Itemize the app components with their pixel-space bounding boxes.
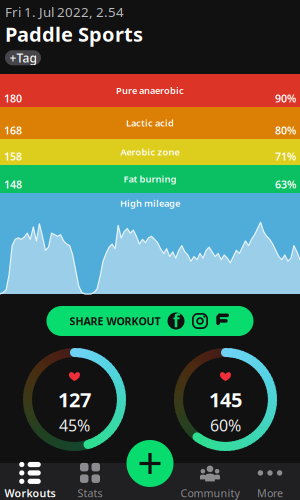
staticText: 168: [4, 123, 22, 137]
staticText: Lactic acid: [126, 117, 174, 129]
staticText: Aerobic zone: [120, 146, 179, 158]
staticText: Workouts: [4, 486, 55, 500]
staticText: f: [173, 309, 180, 332]
button[interactable]: +Tag: [5, 50, 41, 65]
staticText: More: [257, 486, 283, 500]
staticText: Pure anaerobic: [116, 84, 184, 97]
button[interactable]: Stats: [60, 463, 120, 500]
staticText: 71%: [275, 149, 296, 163]
staticText: 145: [209, 386, 242, 413]
staticText: Fat burning: [123, 173, 176, 185]
staticText: Community: [180, 486, 239, 500]
button[interactable]: More: [240, 463, 300, 500]
button[interactable]: Add workout: [126, 440, 173, 487]
staticText: SHARE WORKOUT: [69, 314, 160, 328]
button[interactable]: Community: [180, 463, 240, 500]
staticText: 180: [4, 91, 22, 105]
staticText: 158: [4, 149, 22, 163]
staticText: High mileage: [120, 197, 180, 209]
staticText: 63%: [275, 177, 296, 191]
staticText: Fri 1. Jul 2022, 2.54: [5, 3, 124, 21]
staticText: 90%: [275, 91, 296, 105]
staticText: +Tag: [9, 50, 36, 66]
button[interactable]: Workouts: [0, 463, 60, 500]
staticText: 148: [4, 177, 22, 191]
staticText: Paddle Sports: [5, 21, 143, 47]
staticText: 127: [58, 386, 91, 413]
staticText: Stats: [77, 486, 102, 500]
staticText: 60%: [210, 415, 241, 436]
button[interactable]: SHARE WORKOUT: [46, 306, 253, 336]
staticText: 80%: [275, 123, 296, 137]
staticText: 45%: [59, 415, 90, 436]
